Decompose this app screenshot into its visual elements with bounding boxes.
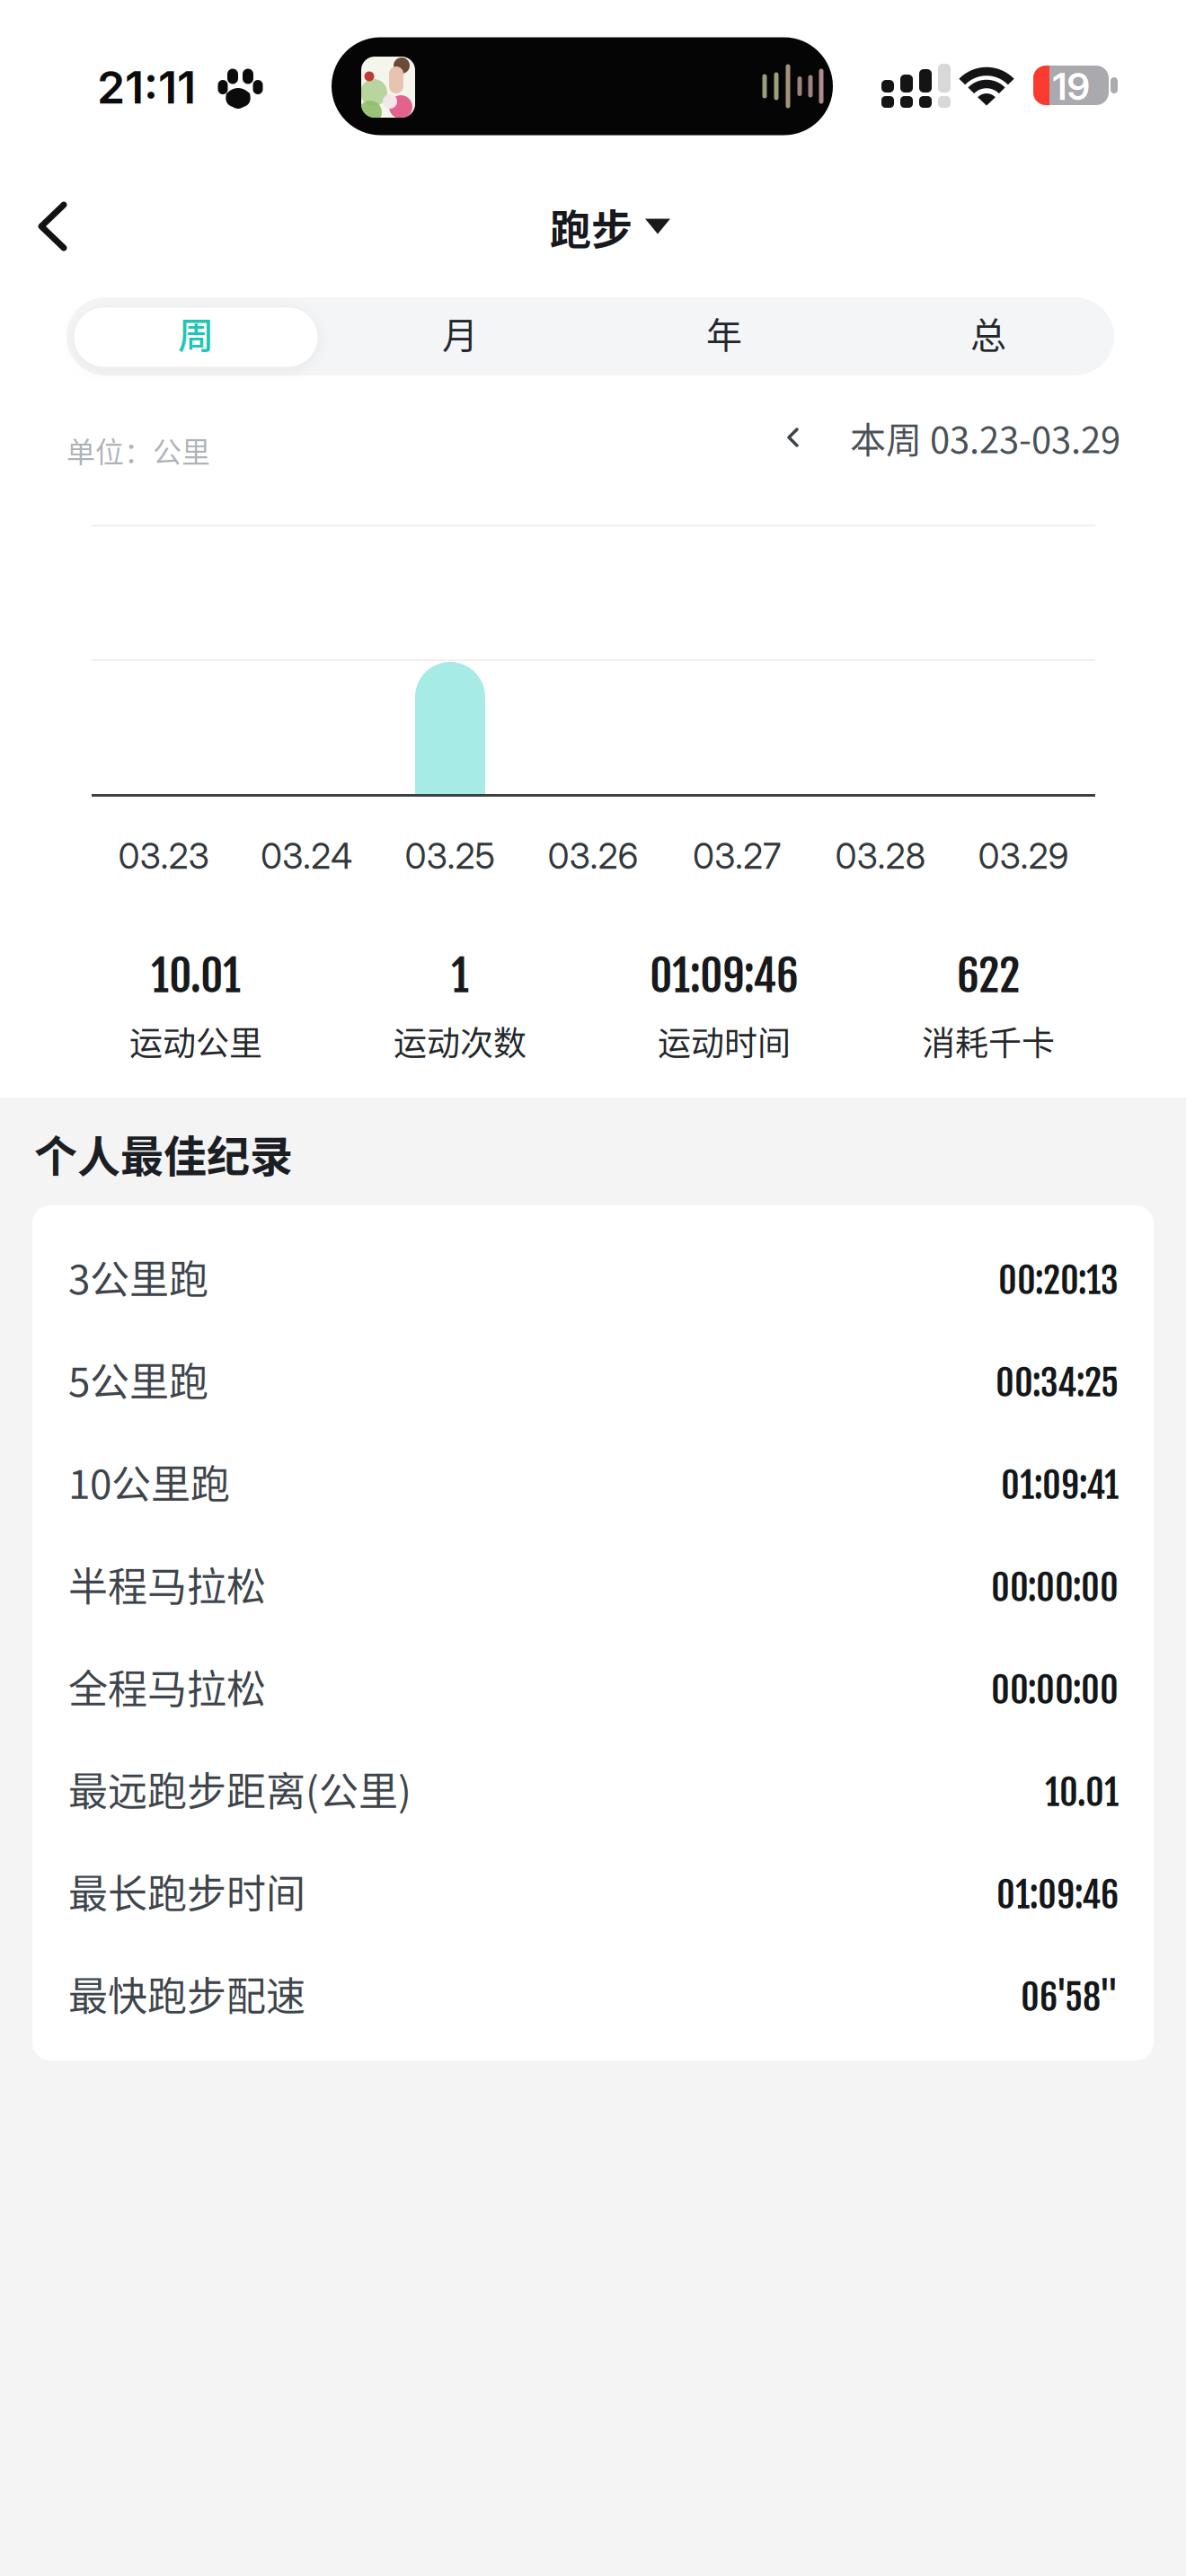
staticText: 03.27 [693, 835, 781, 877]
staticText: 最长跑步时间 [68, 1862, 305, 1920]
staticText: 总 [970, 307, 1006, 359]
staticText: 03.23 [118, 835, 209, 877]
staticText: 10.01 [151, 948, 241, 1003]
staticText: 运动次数 [394, 1017, 527, 1065]
staticText: 本周 03.23-03.29 [850, 411, 1120, 463]
staticText: 00:00:00 [991, 1565, 1119, 1610]
staticText: 01:09:46 [996, 1872, 1119, 1917]
staticText: 个人最佳纪录 [34, 1122, 293, 1184]
button[interactable]: 本周 03.23-03.29 [788, 411, 1120, 463]
staticText: 03.25 [405, 835, 496, 877]
staticText: 00:20:13 [998, 1258, 1119, 1303]
button[interactable]: 跑步 [550, 196, 670, 256]
staticText: 3公里跑 [68, 1248, 208, 1305]
staticText: 06'58" [1021, 1975, 1119, 2020]
staticText: 10公里跑 [68, 1453, 230, 1510]
staticText: 月 [442, 307, 478, 359]
staticText: 消耗千卡 [922, 1017, 1055, 1065]
staticText: 19 [1053, 63, 1089, 109]
staticText: 00:00:00 [991, 1667, 1119, 1713]
staticText: 运动公里 [129, 1017, 262, 1065]
staticText: 03.29 [978, 835, 1069, 877]
staticText: 03.26 [548, 835, 638, 877]
staticText: 5公里跑 [68, 1351, 208, 1408]
button[interactable] [41, 201, 68, 251]
staticText: 年 [706, 307, 742, 359]
staticText: 全程马拉松 [68, 1658, 266, 1715]
button[interactable]: 周 [74, 308, 318, 367]
staticText: 01:09:41 [1001, 1463, 1119, 1508]
button[interactable]: 月 [338, 308, 582, 367]
staticText: 00:34:25 [996, 1360, 1119, 1405]
staticText: 最快跑步配速 [68, 1965, 305, 2022]
staticText: 03.24 [261, 835, 352, 877]
staticText: 周 [178, 307, 214, 359]
staticText: 半程马拉松 [68, 1555, 266, 1613]
staticText: 跑步 [550, 196, 633, 256]
staticText: 03.28 [835, 835, 926, 877]
staticText: 622 [957, 948, 1020, 1003]
staticText: 1 [451, 948, 469, 1003]
button[interactable]: 总 [867, 308, 1110, 367]
button[interactable]: 年 [602, 308, 846, 367]
staticText: 运动时间 [658, 1017, 791, 1065]
staticText: 01:09:46 [650, 948, 799, 1003]
staticText: 21:11 [97, 60, 196, 114]
staticText: 单位：公里 [66, 429, 210, 471]
staticText: 10.01 [1045, 1770, 1119, 1815]
staticText: 最远跑步距离(公里) [68, 1760, 412, 1817]
